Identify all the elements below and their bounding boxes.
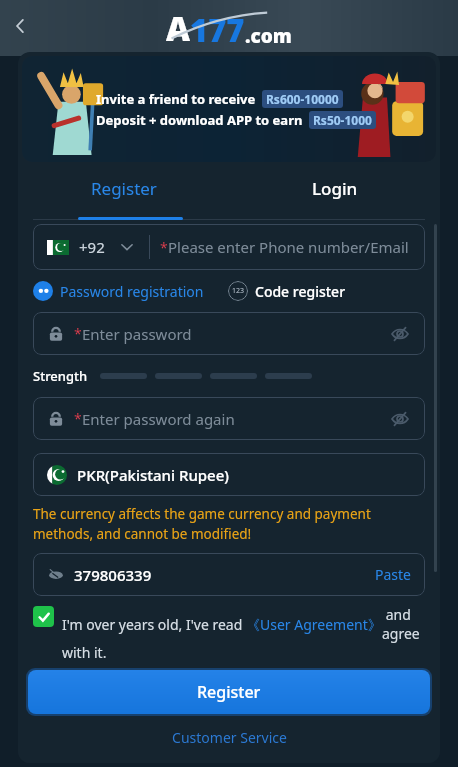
staticText: Code register: [255, 282, 346, 301]
staticText: PKR(Pakistani Rupee): [77, 465, 230, 485]
button[interactable]: 379806339: [33, 553, 425, 596]
button[interactable]: Login: [229, 162, 440, 214]
staticText: Customer Service: [172, 728, 287, 747]
staticText: I'm over years old, I've read: [62, 615, 246, 634]
staticText: Password registration: [60, 282, 204, 301]
button[interactable]: Register: [18, 162, 229, 214]
staticText: The currency affects the game currency a…: [33, 505, 425, 543]
staticText: Invite a friend to receive: [96, 90, 256, 108]
staticText: 123: [232, 286, 245, 296]
button[interactable]: Register: [28, 670, 430, 714]
button[interactable]: 123: [228, 281, 346, 301]
button[interactable]: PKR(Pakistani Rupee): [33, 453, 425, 496]
button[interactable]: *: [33, 312, 425, 355]
button[interactable]: I'm over years old, I've read: [33, 605, 428, 662]
staticText: with it.: [62, 643, 107, 662]
staticText: .com: [245, 23, 292, 49]
staticText: 379806339: [74, 565, 152, 585]
staticText: Enter password: [82, 324, 192, 344]
staticText: Paste: [375, 565, 411, 584]
button[interactable]: *: [33, 397, 425, 440]
staticText: *: [74, 324, 82, 343]
staticText: Login: [312, 177, 358, 200]
button[interactable]: Password registration: [33, 281, 204, 301]
staticText: Deposit + download APP to earn: [96, 111, 303, 129]
button[interactable]: Back: [4, 10, 36, 42]
staticText: 《User Agreement》: [246, 615, 382, 634]
staticText: and agree: [382, 605, 428, 643]
button[interactable]: +92: [33, 224, 425, 270]
staticText: Register: [91, 177, 157, 200]
button[interactable]: Customer Service: [164, 726, 295, 749]
button[interactable]: Invite a friend to receive: [22, 56, 436, 162]
button[interactable]: Show password again: [389, 408, 411, 430]
staticText: *: [74, 409, 82, 428]
staticText: *: [160, 238, 168, 257]
staticText: Rs50-1000: [313, 112, 372, 128]
staticText: Please enter Phone number/Email: [168, 237, 409, 257]
button[interactable]: Paste: [375, 565, 411, 584]
staticText: +92: [79, 237, 105, 257]
staticText: Register: [197, 681, 261, 703]
staticText: 177: [190, 9, 245, 51]
button[interactable]: Show password: [389, 323, 411, 345]
staticText: Strength: [33, 367, 88, 385]
staticText: A: [166, 6, 190, 51]
staticText: Enter password again: [82, 409, 235, 429]
staticText: Rs600-10000: [266, 91, 339, 107]
